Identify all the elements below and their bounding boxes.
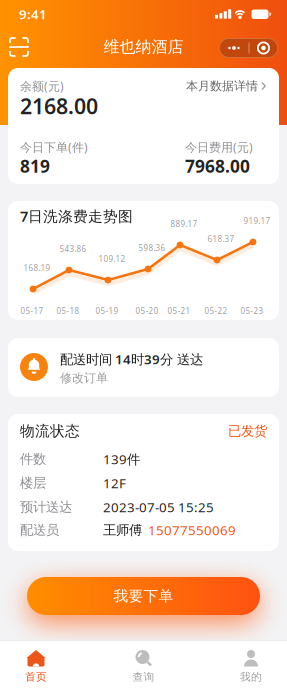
button[interactable]: 15077550069 bbox=[148, 522, 238, 538]
staticText: 首页 bbox=[25, 670, 47, 683]
button[interactable]: 配送时间 14时39分 送达 bbox=[8, 338, 279, 397]
button[interactable]: 查询 bbox=[113, 644, 287, 693]
staticText: 139件 bbox=[103, 450, 140, 468]
staticText: 今日费用(元) bbox=[185, 139, 253, 155]
staticText: 9:41 bbox=[19, 5, 47, 23]
staticText: 919.17 bbox=[243, 216, 270, 226]
staticText: 598.36 bbox=[138, 243, 165, 253]
staticText: 05-20 bbox=[135, 306, 158, 316]
staticText: 余额(元) bbox=[20, 78, 64, 94]
staticText: 05-18 bbox=[56, 306, 79, 316]
staticText: 已发货 bbox=[228, 423, 267, 439]
staticText: 件数 bbox=[20, 451, 46, 467]
staticText: 15077550069 bbox=[148, 521, 236, 539]
staticText: 查询 bbox=[132, 670, 154, 683]
staticText: 我的 bbox=[240, 670, 262, 683]
staticText: 我要下单 bbox=[113, 587, 173, 605]
staticText: 618.37 bbox=[207, 234, 234, 244]
staticText: 889.17 bbox=[170, 219, 197, 229]
button[interactable]: More bbox=[219, 38, 278, 58]
staticText: 05-22 bbox=[204, 306, 227, 316]
staticText: 今日下单(件) bbox=[20, 139, 88, 155]
staticText: 楼层 bbox=[20, 475, 46, 491]
staticText: 168.19 bbox=[23, 263, 50, 273]
button[interactable]: 本月数据详情 bbox=[186, 79, 267, 93]
staticText: 12F bbox=[103, 474, 126, 492]
staticText: 王师傅 bbox=[103, 522, 142, 538]
staticText: 05-19 bbox=[95, 306, 118, 316]
button[interactable]: 我的 bbox=[221, 644, 287, 693]
button[interactable]: Scan bbox=[6, 34, 32, 60]
staticText: 05-23 bbox=[240, 306, 263, 316]
staticText: 维也纳酒店 bbox=[103, 37, 183, 57]
staticText: 05-21 bbox=[167, 306, 190, 316]
staticText: 2023-07-05 15:25 bbox=[103, 498, 214, 516]
button[interactable]: 首页 bbox=[6, 644, 287, 693]
staticText: 2168.00 bbox=[20, 92, 98, 120]
staticText: 配送员 bbox=[20, 522, 59, 538]
staticText: 109.12 bbox=[98, 254, 125, 264]
staticText: 物流状态 bbox=[20, 422, 80, 440]
staticText: 修改订单 bbox=[60, 371, 108, 385]
staticText: 819 bbox=[20, 154, 50, 177]
staticText: 05-17 bbox=[20, 306, 43, 316]
staticText: 配送时间 14时39分 送达 bbox=[60, 350, 203, 368]
staticText: 7968.00 bbox=[185, 154, 250, 177]
button[interactable]: 我要下单 bbox=[27, 577, 260, 615]
staticText: 7日洗涤费走势图 bbox=[20, 206, 133, 226]
staticText: 本月数据详情 bbox=[186, 79, 258, 93]
staticText: 543.86 bbox=[59, 244, 86, 254]
staticText: 预计送达 bbox=[20, 499, 72, 515]
button[interactable]: Close bbox=[249, 38, 287, 58]
